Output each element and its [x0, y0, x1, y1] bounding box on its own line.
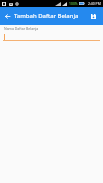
staticText: Tambah Daftar Belanja	[14, 12, 79, 20]
staticText: 100%	[69, 1, 78, 6]
staticText: Nama Daftar Belanja	[4, 26, 39, 31]
button[interactable]: Back	[0, 7, 15, 25]
button[interactable]: Nama Daftar Belanja	[0, 25, 103, 44]
staticText: 2:40 PM	[88, 1, 101, 6]
button[interactable]: Save	[84, 7, 103, 25]
